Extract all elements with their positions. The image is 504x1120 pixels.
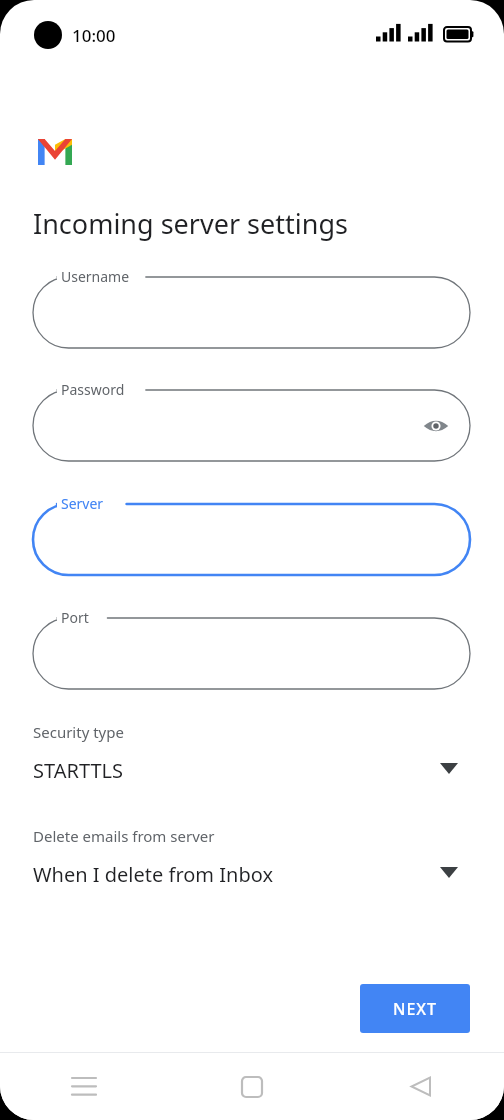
button[interactable]: Server [33, 504, 470, 575]
staticText: STARTTLS [33, 757, 124, 784]
staticText: Username [61, 267, 130, 286]
staticText: 10:00 [72, 24, 116, 47]
button[interactable]: Back [336, 1053, 504, 1120]
button[interactable]: Home [168, 1053, 336, 1120]
staticText: Server [61, 494, 104, 513]
button[interactable]: NEXT [360, 984, 470, 1033]
staticText: NEXT [393, 998, 438, 1020]
staticText: Incoming server settings [33, 205, 348, 242]
button[interactable]: Password [33, 390, 470, 461]
staticText: When I delete from Inbox [33, 861, 273, 888]
staticText: Password [61, 380, 125, 399]
button[interactable]: Recent apps [0, 1053, 168, 1120]
button[interactable]: Security type [33, 722, 470, 791]
staticText: Delete emails from server [33, 826, 215, 846]
button[interactable]: Port [33, 618, 470, 689]
button[interactable]: Username [33, 277, 470, 348]
button[interactable]: Show password [414, 404, 458, 448]
staticText: Security type [33, 722, 124, 742]
button[interactable]: Delete emails from server [33, 826, 470, 895]
staticText: Port [61, 608, 89, 627]
